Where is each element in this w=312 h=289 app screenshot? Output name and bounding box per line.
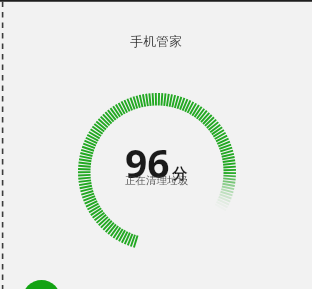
button[interactable]: 手机管家 xyxy=(120,30,192,52)
staticText: 手机管家 xyxy=(130,33,182,49)
other: Phone health score ring xyxy=(0,0,312,289)
staticText: 正在清理垃圾 xyxy=(125,174,188,187)
staticText: 分 xyxy=(172,165,187,184)
staticText: 96 xyxy=(125,136,170,189)
button[interactable]: 正在清理垃圾 xyxy=(119,172,194,189)
button[interactable]: 96 xyxy=(125,136,187,189)
button[interactable] xyxy=(78,137,312,289)
